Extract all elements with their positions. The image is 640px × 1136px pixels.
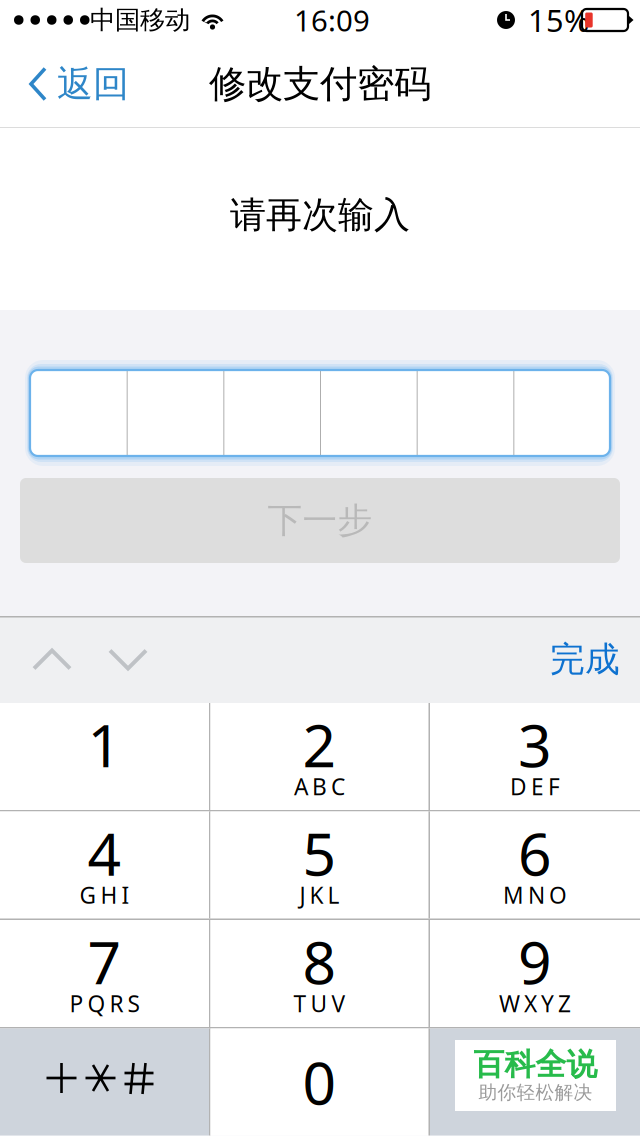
button[interactable]: 8 <box>210 920 428 1027</box>
button[interactable]: 6 <box>430 811 640 918</box>
staticText: M N O <box>503 880 567 910</box>
staticText: 中国移动 <box>90 4 190 35</box>
button[interactable]: 9 <box>430 920 640 1027</box>
staticText: G H I <box>79 880 129 910</box>
button[interactable]: 2 <box>210 703 428 810</box>
staticText: 助你轻松解决 <box>478 1081 592 1104</box>
staticText: 0 <box>302 1043 336 1121</box>
staticText: P Q R S <box>69 988 139 1018</box>
button[interactable]: Previous field <box>14 616 90 703</box>
staticText: 7 <box>87 922 121 1000</box>
staticText: D E F <box>510 771 560 801</box>
staticText: 完成 <box>550 638 620 681</box>
button[interactable]: 4 <box>0 811 209 918</box>
button[interactable]: Delete <box>430 1028 640 1135</box>
staticText: 4 <box>87 814 121 892</box>
button[interactable]: 完成 <box>532 616 638 703</box>
button[interactable]: 3 <box>430 703 640 810</box>
button[interactable]: 5 <box>210 811 428 918</box>
staticText: 修改支付密码 <box>209 61 431 107</box>
staticText: J K L <box>299 880 339 910</box>
button[interactable]: Next field <box>90 616 166 703</box>
staticText: 1 <box>87 705 121 783</box>
staticText: 16:09 <box>294 0 370 39</box>
staticText: 9 <box>518 922 552 1000</box>
staticText: 6 <box>518 814 552 892</box>
button[interactable]: 7 <box>0 920 209 1027</box>
staticText: 5 <box>302 814 336 892</box>
staticText: 百科全说 <box>473 1046 597 1083</box>
staticText: A B C <box>294 771 345 801</box>
button[interactable]: 下一步 <box>20 478 620 563</box>
staticText: 2 <box>302 705 336 783</box>
button[interactable]: 0 <box>210 1028 428 1135</box>
staticText: 下一步 <box>267 499 372 542</box>
staticText: 3 <box>518 705 552 783</box>
staticText: T U V <box>293 988 345 1018</box>
staticText: 请再次输入 <box>230 193 410 237</box>
button[interactable]: 返回 <box>0 44 145 124</box>
staticText: W X Y Z <box>499 988 571 1018</box>
staticText: 返回 <box>57 62 129 106</box>
staticText: 15% <box>528 0 589 40</box>
button[interactable]: 1 <box>0 703 209 810</box>
button[interactable]: Symbols <box>0 1028 209 1135</box>
staticText: 8 <box>302 922 336 1000</box>
